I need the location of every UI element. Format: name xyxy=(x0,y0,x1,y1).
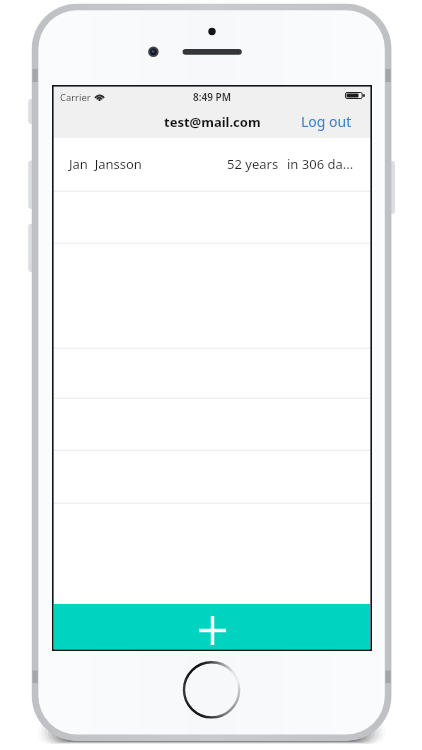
staticText: 52 years xyxy=(227,155,279,173)
button[interactable]: Log out xyxy=(291,106,370,137)
staticText: Jan Jansson xyxy=(69,155,142,173)
button[interactable]: Add xyxy=(54,604,370,649)
button[interactable]: Jan Jansson xyxy=(54,138,370,190)
staticText: Carrier xyxy=(60,91,91,104)
staticText: in 306 da... xyxy=(287,155,354,173)
staticText: test@mail.com xyxy=(164,113,261,131)
staticText: 8:49 PM xyxy=(193,90,231,104)
staticText: Log out xyxy=(301,112,352,131)
